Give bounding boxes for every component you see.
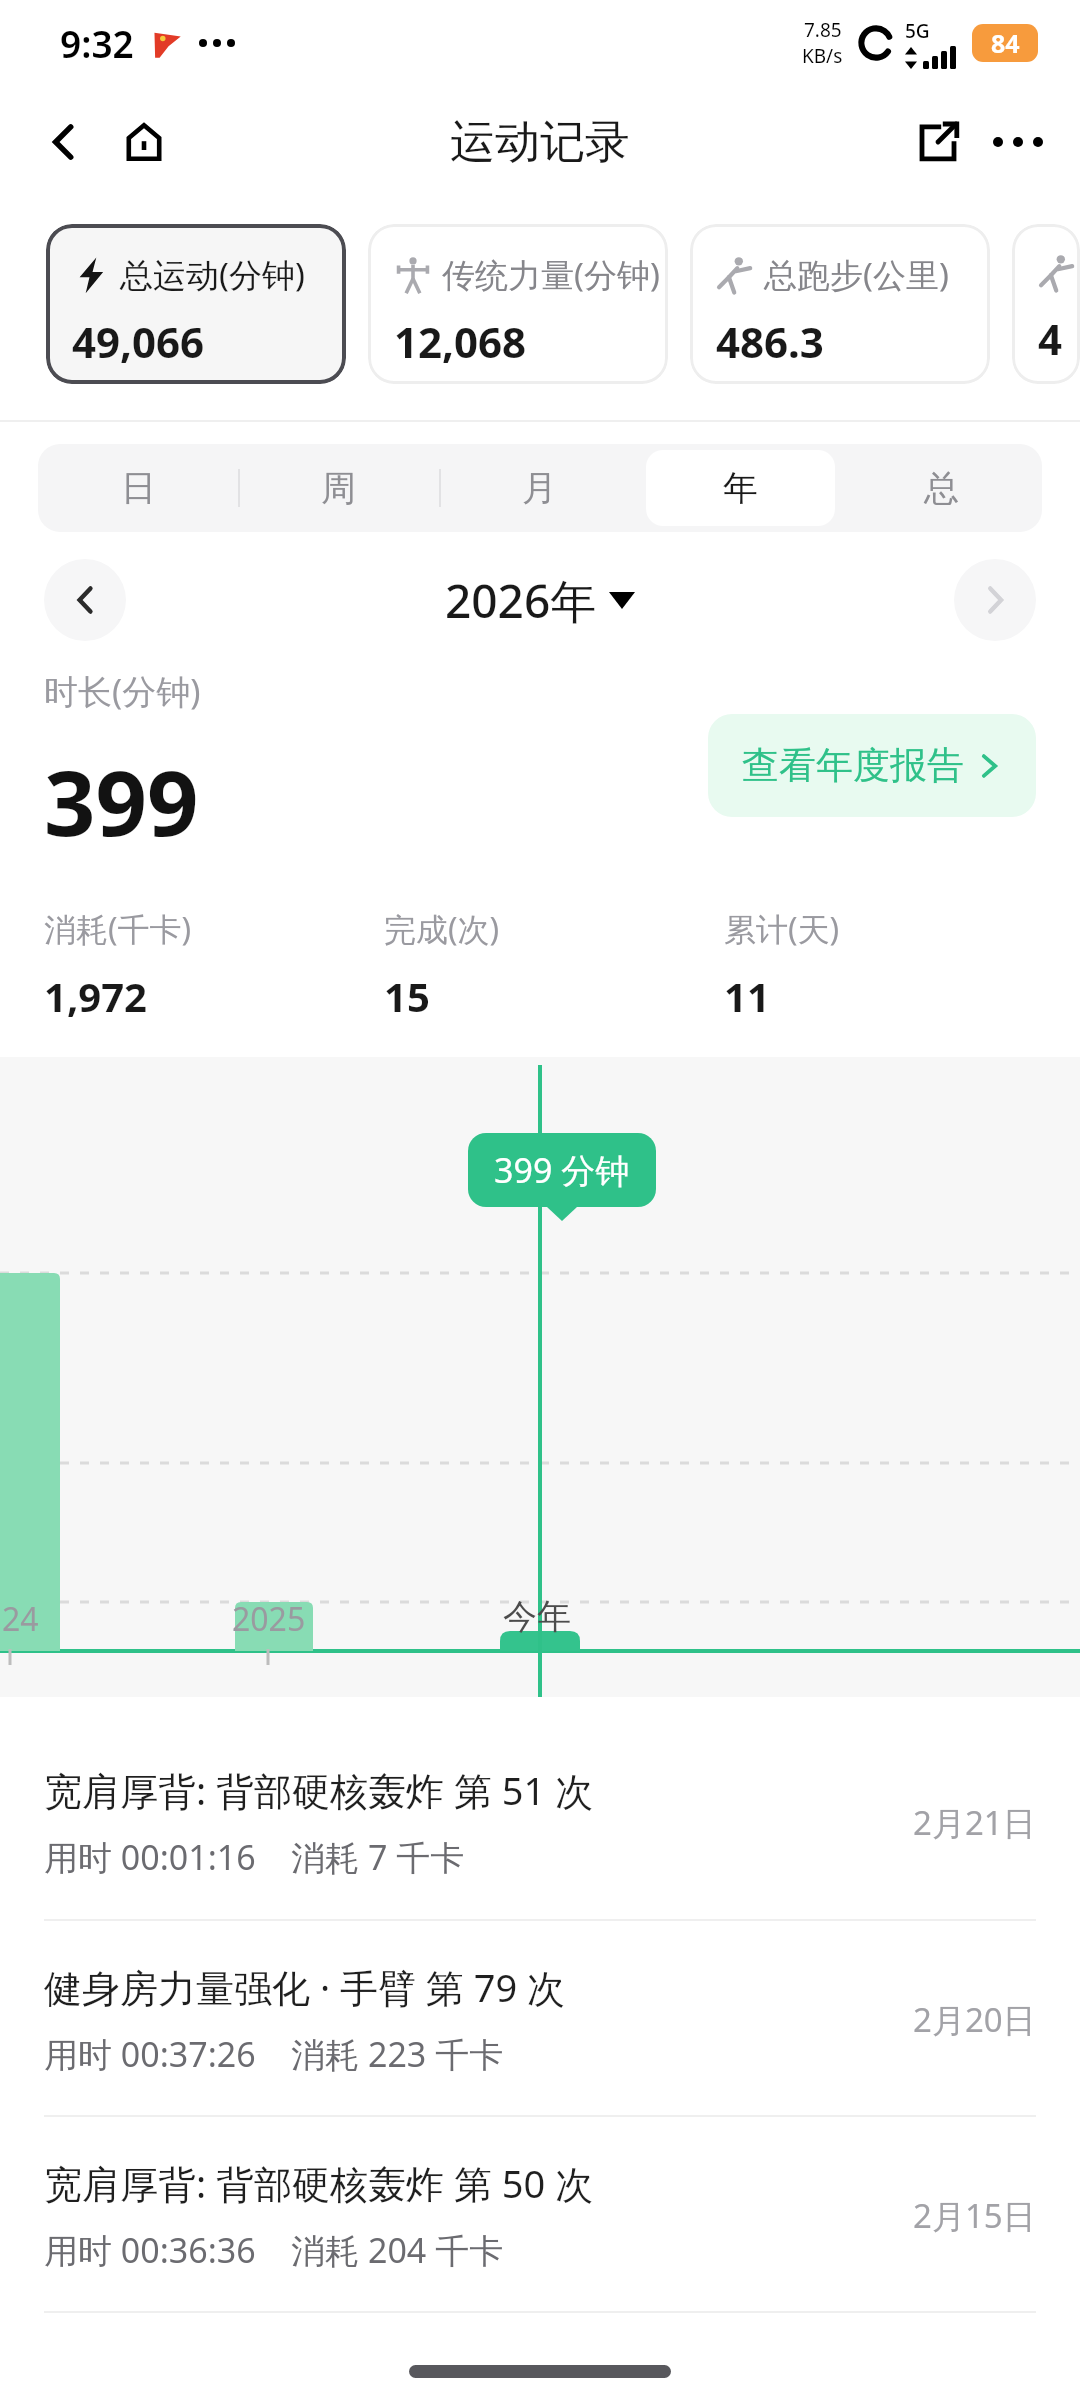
button[interactable]: 总跑步(公里) (690, 224, 990, 384)
staticText: 周 (321, 466, 356, 510)
staticText: 2026年 (445, 569, 597, 632)
staticText: 年 (723, 466, 758, 510)
staticText: 486.3 (716, 313, 824, 370)
staticText: 时长(分钟) (44, 668, 201, 714)
staticText: 健身房力量强化 · 手臂 第 79 次 (44, 1961, 566, 2013)
staticText: 总运动(分钟) (120, 252, 305, 297)
staticText: 399 分钟 (494, 1147, 630, 1193)
staticText: 49,066 (72, 313, 205, 370)
staticText: 用时 00:36:36 消耗 204 千卡 (44, 2227, 504, 2273)
staticText: 累计(天) (724, 907, 840, 951)
staticText: 传统力量(分钟) (442, 252, 660, 297)
staticText: 4 (1038, 310, 1063, 367)
staticText: 用时 00:37:26 消耗 223 千卡 (44, 2031, 504, 2077)
button[interactable]: 周 (244, 450, 433, 526)
button[interactable]: Back (24, 102, 104, 182)
staticText: 消耗(千卡) (44, 907, 192, 951)
button[interactable]: Home (104, 102, 184, 182)
staticText: 7.85 (804, 17, 842, 43)
staticText: 运动记录 (450, 114, 630, 171)
staticText: 宽肩厚背: 背部硬核轰炸 第 50 次 (44, 2157, 594, 2209)
staticText: 2月15日 (913, 2193, 1036, 2238)
button[interactable]: 总运动(分钟) (46, 224, 346, 384)
staticText: 月 (522, 466, 557, 510)
button[interactable]: 健身房力量强化 · 手臂 第 79 次 (0, 1921, 1080, 2117)
button[interactable]: 年 (646, 450, 835, 526)
button[interactable]: 2026年 (431, 559, 649, 642)
button[interactable]: 宽肩厚背: 背部硬核轰炸 第 50 次 (0, 2117, 1080, 2313)
staticText: 日 (121, 466, 156, 510)
staticText: 2月20日 (913, 1997, 1036, 2042)
staticText: 2025 (232, 1597, 306, 1641)
staticText: 9:32 (60, 18, 134, 68)
button[interactable]: 查看年度报告 (708, 714, 1036, 817)
staticText: 查看年度报告 (742, 742, 964, 789)
staticText: 15 (384, 969, 430, 1023)
staticText: 5G (905, 18, 930, 44)
staticText: 完成(次) (384, 907, 500, 951)
staticText: 84 (991, 26, 1020, 60)
button[interactable]: 总骑行(公里) (1012, 224, 1080, 384)
staticText: 12,068 (394, 313, 527, 370)
staticText: 总 (924, 466, 959, 510)
button[interactable]: 月 (445, 450, 634, 526)
button[interactable]: 传统力量(分钟) (368, 224, 668, 384)
button[interactable]: 总 (847, 450, 1036, 526)
button[interactable]: 日 (44, 450, 232, 526)
staticText: 总跑步(公里) (764, 252, 949, 297)
staticText: 今年 (503, 1595, 571, 1638)
button[interactable]: More options (978, 102, 1058, 182)
staticText: KB/s (802, 43, 843, 69)
staticText: 399 (44, 740, 199, 863)
staticText: 用时 00:01:16 消耗 7 千卡 (44, 1834, 465, 1880)
staticText: 24 (2, 1597, 39, 1641)
staticText: 宽肩厚背: 背部硬核轰炸 第 51 次 (44, 1764, 594, 1816)
staticText: 1,972 (44, 969, 147, 1023)
button[interactable]: Share (898, 102, 978, 182)
staticText: 2月21日 (913, 1800, 1036, 1845)
button[interactable]: Previous year (44, 559, 126, 641)
button[interactable]: 宽肩厚背: 背部硬核轰炸 第 51 次 (0, 1723, 1080, 1921)
staticText: 11 (724, 969, 770, 1023)
button[interactable]: Next year (954, 559, 1036, 641)
